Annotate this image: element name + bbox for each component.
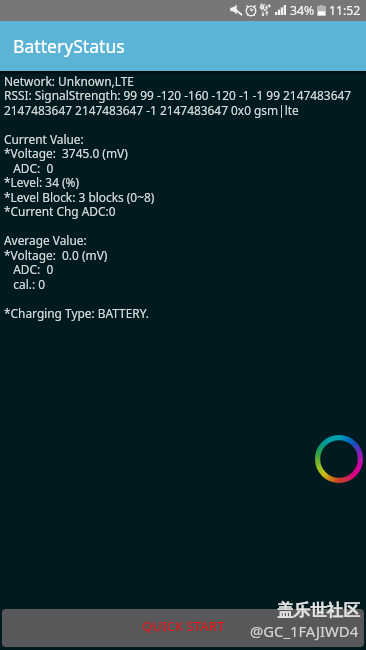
- button[interactable]: BatteryStatus: [0, 21, 366, 71]
- staticText: *Current Chg ADC:0: [4, 203, 116, 219]
- staticText: 2147483647 2147483647 -1 2147483647 0x0 …: [4, 102, 299, 118]
- staticText: *Voltage: 3745.0 (mV): [4, 145, 128, 161]
- other: Sound muted: [230, 4, 242, 15]
- staticText: QUICK START: [142, 617, 225, 635]
- other: Loading: [315, 435, 363, 483]
- other: Battery 34 percent: [317, 5, 326, 16]
- button[interactable]: QUICK START: [2, 609, 364, 647]
- staticText: *Level: 34 (%): [4, 174, 80, 190]
- staticText: 盖乐世社区: [277, 600, 360, 621]
- staticText: Current Value:: [4, 131, 84, 147]
- other: Alarm set: [245, 4, 257, 16]
- staticText: ADC: 0: [4, 160, 54, 176]
- staticText: Network: Unknown,LTE: [4, 73, 134, 89]
- staticText: BatteryStatus: [13, 34, 125, 58]
- staticText: ADC: 0: [4, 261, 54, 277]
- staticText: @GC_1FAJIWD4: [250, 621, 359, 641]
- staticText: Average Value:: [4, 232, 87, 248]
- other: 4G plus network: [260, 3, 271, 16]
- other: Signal strength: [275, 5, 286, 15]
- staticText: 11:52: [329, 2, 361, 19]
- staticText: *Voltage: 0.0 (mV): [4, 247, 108, 263]
- staticText: 34%: [290, 2, 315, 19]
- staticText: *Charging Type: BATTERY.: [4, 305, 149, 321]
- staticText: RSSI: SignalStrength: 99 99 -120 -160 -1…: [4, 87, 352, 103]
- staticText: *Level Block: 3 blocks (0~8): [4, 189, 155, 205]
- staticText: cal.: 0: [4, 276, 45, 292]
